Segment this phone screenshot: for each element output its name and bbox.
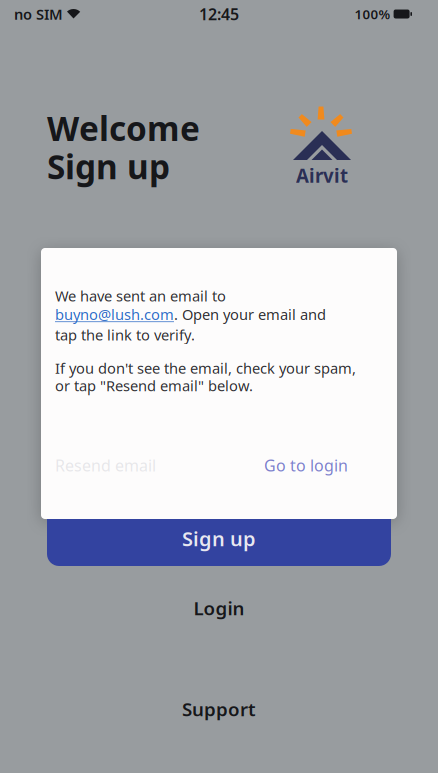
staticText: We have sent an email to	[55, 286, 226, 305]
staticText: or tap "Resend email" below.	[55, 376, 253, 395]
staticText: buyno@lush.com	[55, 304, 174, 324]
button[interactable]: Go to login	[264, 455, 348, 476]
staticText: Welcome	[47, 106, 200, 150]
staticText: no SIM	[14, 4, 63, 24]
staticText: Sign up	[182, 525, 256, 552]
staticText: If you don't see the email, check your s…	[55, 358, 356, 378]
staticText: 100%	[355, 5, 391, 23]
staticText: Airvit	[296, 163, 348, 188]
button[interactable]: Login	[154, 591, 284, 625]
button[interactable]: Resend email	[55, 455, 156, 476]
staticText: 12:45	[199, 3, 239, 25]
staticText: Resend email	[55, 455, 156, 476]
staticText: Login	[193, 596, 244, 620]
button[interactable]: Support	[154, 693, 284, 725]
staticText: . Open your email and	[174, 304, 326, 324]
staticText: Go to login	[264, 455, 348, 476]
staticText: Support	[182, 697, 256, 721]
staticText: tap the link to verify.	[55, 325, 195, 344]
staticText: Sign up	[47, 144, 170, 189]
button[interactable]: Sign up	[47, 519, 391, 566]
